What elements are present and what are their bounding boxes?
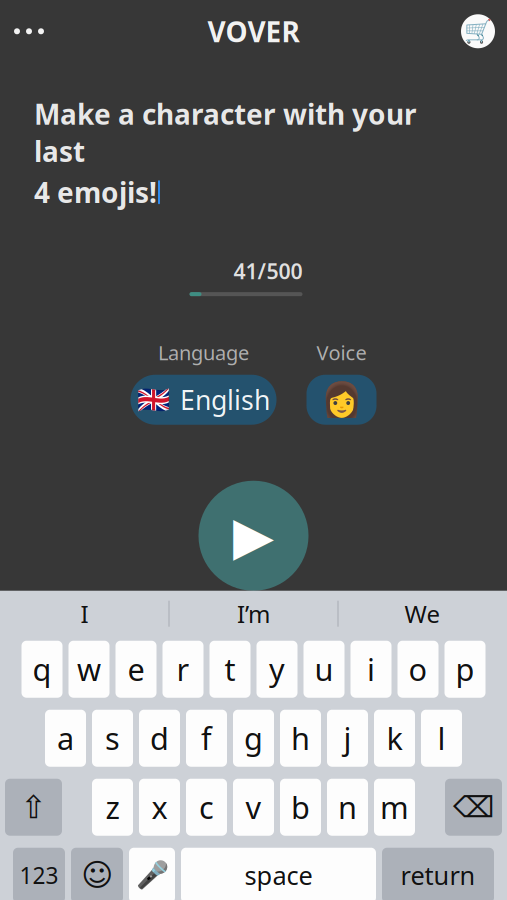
button[interactable]: e (115, 641, 156, 698)
staticText: ⇧ (20, 789, 47, 825)
button[interactable]: 🇬🇧 (130, 375, 276, 425)
button[interactable]: Play (198, 481, 308, 591)
staticText: d (150, 718, 169, 759)
button[interactable]: m (374, 779, 415, 836)
staticText: g (244, 718, 263, 759)
button[interactable]: a (45, 710, 86, 767)
staticText: y (269, 649, 285, 690)
staticText: VOVER (207, 13, 299, 50)
staticText: w (77, 649, 101, 690)
staticText: z (105, 787, 119, 828)
staticText: b (291, 787, 310, 828)
staticText: f (201, 718, 212, 759)
button[interactable]: q (21, 641, 62, 698)
staticText: 🎤 (135, 860, 168, 890)
staticText: 4 emojis! (34, 174, 157, 211)
staticText: 👩 (320, 381, 362, 419)
button[interactable]: t (209, 641, 250, 698)
button[interactable]: f (186, 710, 227, 767)
staticText: x (151, 787, 167, 828)
button[interactable]: Emoji (71, 848, 123, 900)
button[interactable]: h (280, 710, 321, 767)
button[interactable]: y (256, 641, 297, 698)
staticText: 123 (19, 860, 58, 890)
button[interactable]: s (92, 710, 133, 767)
button[interactable]: i (350, 641, 391, 698)
staticText: h (291, 718, 310, 759)
staticText: p (455, 649, 474, 690)
button[interactable]: k (374, 710, 415, 767)
staticText: English (180, 382, 270, 417)
staticText: We (404, 598, 440, 630)
button[interactable]: 123 (13, 848, 65, 900)
staticText: ⌫ (453, 791, 494, 824)
staticText: 41/500 (233, 257, 302, 285)
staticText: e (127, 649, 144, 690)
staticText: s (105, 718, 120, 759)
button[interactable]: More options (0, 14, 58, 48)
staticText: q (32, 649, 51, 690)
staticText: v (245, 787, 261, 828)
staticText: c (199, 787, 214, 828)
button[interactable]: j (327, 710, 368, 767)
staticText: o (408, 649, 427, 690)
button[interactable]: Cart (449, 6, 507, 56)
button[interactable]: b (280, 779, 321, 836)
button[interactable]: We (338, 592, 506, 636)
staticText: r (176, 649, 189, 690)
button[interactable]: z (92, 779, 133, 836)
staticText: m (380, 787, 409, 828)
button[interactable]: space (181, 848, 376, 900)
button[interactable]: Shift (5, 779, 62, 836)
staticText: n (338, 787, 357, 828)
button[interactable]: g (233, 710, 274, 767)
staticText: a (57, 718, 74, 759)
button[interactable]: Dictation (129, 848, 175, 900)
button[interactable]: return (382, 848, 494, 900)
staticText: space (244, 858, 312, 892)
button[interactable]: d (139, 710, 180, 767)
button[interactable]: I (0, 592, 168, 636)
button[interactable]: n (327, 779, 368, 836)
button[interactable]: u (303, 641, 344, 698)
staticText: Voice (316, 339, 366, 366)
button[interactable]: c (186, 779, 227, 836)
staticText: k (386, 718, 402, 759)
staticText: ☺ (81, 858, 113, 893)
staticText: l (437, 718, 445, 759)
button[interactable]: Voice selection (306, 375, 376, 425)
staticText: Make a character with your last (34, 95, 417, 170)
button[interactable]: l (421, 710, 462, 767)
staticText: return (400, 858, 475, 892)
button[interactable]: r (162, 641, 203, 698)
staticText: u (314, 649, 333, 690)
button[interactable]: v (233, 779, 274, 836)
staticText: i (367, 649, 375, 690)
button[interactable]: x (139, 779, 180, 836)
button[interactable]: o (397, 641, 438, 698)
staticText: I (80, 598, 88, 630)
staticText: Language (158, 339, 249, 366)
button[interactable]: w (68, 641, 109, 698)
button[interactable]: I’m (169, 592, 337, 636)
button[interactable]: Delete (445, 779, 502, 836)
staticText: ▶ (233, 505, 274, 566)
staticText: I’m (237, 598, 270, 630)
staticText: 🇬🇧 (137, 384, 170, 415)
staticText: 🛒 (464, 18, 492, 44)
button[interactable]: p (444, 641, 485, 698)
staticText: j (343, 718, 351, 759)
staticText: t (224, 649, 235, 690)
